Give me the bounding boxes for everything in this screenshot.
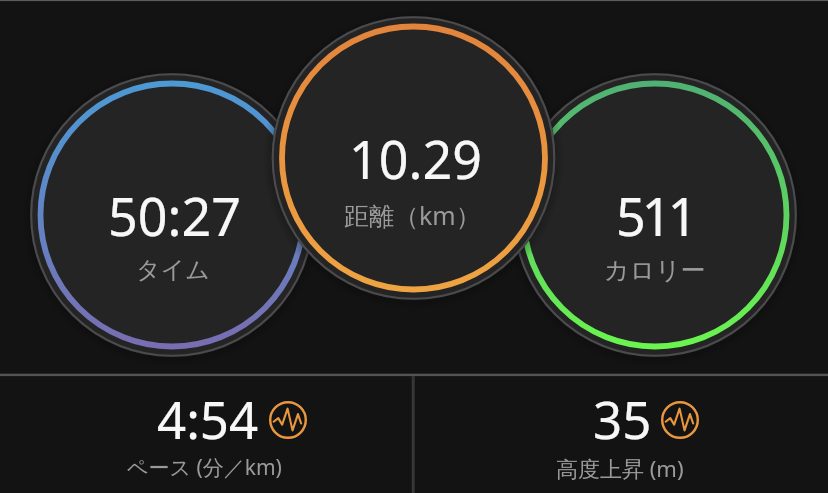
- staticText: 10.29: [349, 123, 482, 194]
- button[interactable]: ペース: [0, 377, 412, 493]
- button[interactable]: [524, 150, 786, 300]
- staticText: 35: [593, 384, 652, 453]
- staticText: カロリー: [604, 255, 706, 286]
- staticText: タイム: [136, 255, 210, 285]
- staticText: 距離（km）: [344, 198, 481, 232]
- button[interactable]: [40, 150, 302, 300]
- staticText: ペース (分／km): [127, 453, 282, 482]
- staticText: 4:54: [157, 384, 259, 453]
- staticText: 高度上昇 (m): [556, 453, 684, 483]
- button[interactable]: 高度上昇: [414, 377, 828, 493]
- staticText: 50:27: [108, 180, 241, 251]
- button[interactable]: [282, 92, 544, 242]
- staticText: 511: [616, 180, 694, 251]
